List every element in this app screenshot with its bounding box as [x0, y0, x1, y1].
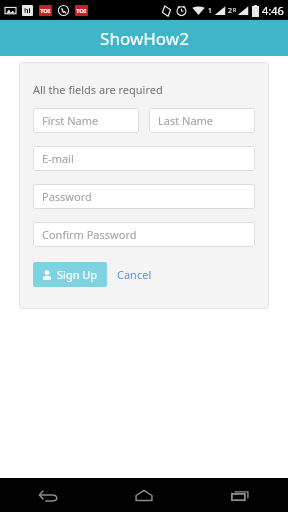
- button[interactable]: Password: [33, 184, 255, 209]
- button[interactable]: Recent apps: [192, 478, 288, 512]
- staticText: Last Name: [158, 113, 214, 128]
- button[interactable]: Sign Up: [33, 262, 107, 287]
- button[interactable]: Confirm Password: [33, 222, 255, 247]
- button[interactable]: First Name: [33, 108, 139, 133]
- staticText: R: [233, 7, 237, 14]
- staticText: Cancel: [117, 267, 152, 282]
- staticText: 1: [208, 6, 213, 16]
- staticText: All the fields are required: [33, 82, 163, 97]
- staticText: ShowHow2: [100, 27, 189, 50]
- staticText: Sign Up: [57, 267, 98, 282]
- button[interactable]: Home: [96, 478, 192, 512]
- button[interactable]: Back: [0, 478, 96, 512]
- button[interactable]: Cancel: [117, 267, 152, 282]
- staticText: TOI: [40, 7, 51, 15]
- button[interactable]: Last Name: [149, 108, 255, 133]
- staticText: Confirm Password: [42, 227, 137, 242]
- staticText: Password: [42, 189, 92, 204]
- staticText: TOI: [76, 7, 87, 15]
- staticText: 2: [228, 6, 233, 16]
- button[interactable]: E-mail: [33, 146, 255, 171]
- staticText: hi: [24, 6, 31, 16]
- staticText: First Name: [42, 113, 99, 128]
- staticText: 4:46: [262, 3, 284, 18]
- staticText: E-mail: [42, 151, 74, 166]
